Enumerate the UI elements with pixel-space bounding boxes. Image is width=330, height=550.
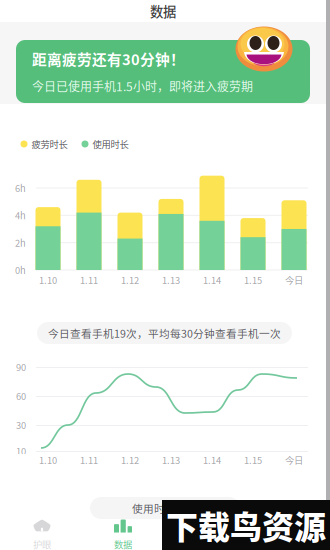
staticText: 1.12 xyxy=(121,453,139,467)
staticText: 数据 xyxy=(150,1,176,21)
button[interactable]: 护眼 xyxy=(1,519,82,550)
staticText: 30 xyxy=(16,418,26,432)
staticText: 1.11 xyxy=(80,453,98,467)
staticText: 1.13 xyxy=(162,453,180,467)
staticText: 1.13 xyxy=(162,273,180,287)
staticText: 今日已使用手机1.5小时，即将进入疲劳期 xyxy=(32,77,253,95)
staticText: 1.11 xyxy=(80,273,98,287)
staticText: 6h xyxy=(15,181,26,195)
staticText: 10 xyxy=(16,444,26,458)
staticText: 使用时段分布 xyxy=(132,500,198,516)
staticText: 60 xyxy=(16,389,26,403)
staticText: 今日查看手机19次，平均每30分钟查看手机一次 xyxy=(48,325,281,341)
staticText: 疲劳时长 xyxy=(31,137,67,151)
staticText: 今日 xyxy=(285,453,303,467)
staticText: 距离疲劳还有30分钟！ xyxy=(32,48,185,69)
staticText: 1.10 xyxy=(39,453,57,467)
staticText: 使用时长 xyxy=(92,137,128,151)
staticText: 1.12 xyxy=(121,273,139,287)
staticText: 2h xyxy=(15,236,26,249)
staticText: 下载鸟资源 xyxy=(166,502,326,548)
staticText: 今日 xyxy=(285,273,303,287)
staticText: 4h xyxy=(15,208,26,222)
staticText: 90 xyxy=(16,360,26,374)
staticText: 1.15 xyxy=(244,453,262,467)
button[interactable]: 数据 xyxy=(82,519,163,550)
staticText: 1.10 xyxy=(39,273,57,287)
staticText: 数据 xyxy=(114,537,132,550)
staticText: 0h xyxy=(15,263,26,277)
staticText: 1.14 xyxy=(203,273,221,287)
staticText: 护眼 xyxy=(33,537,51,550)
staticText: 1.15 xyxy=(244,273,262,287)
staticText: 1.14 xyxy=(203,453,221,467)
